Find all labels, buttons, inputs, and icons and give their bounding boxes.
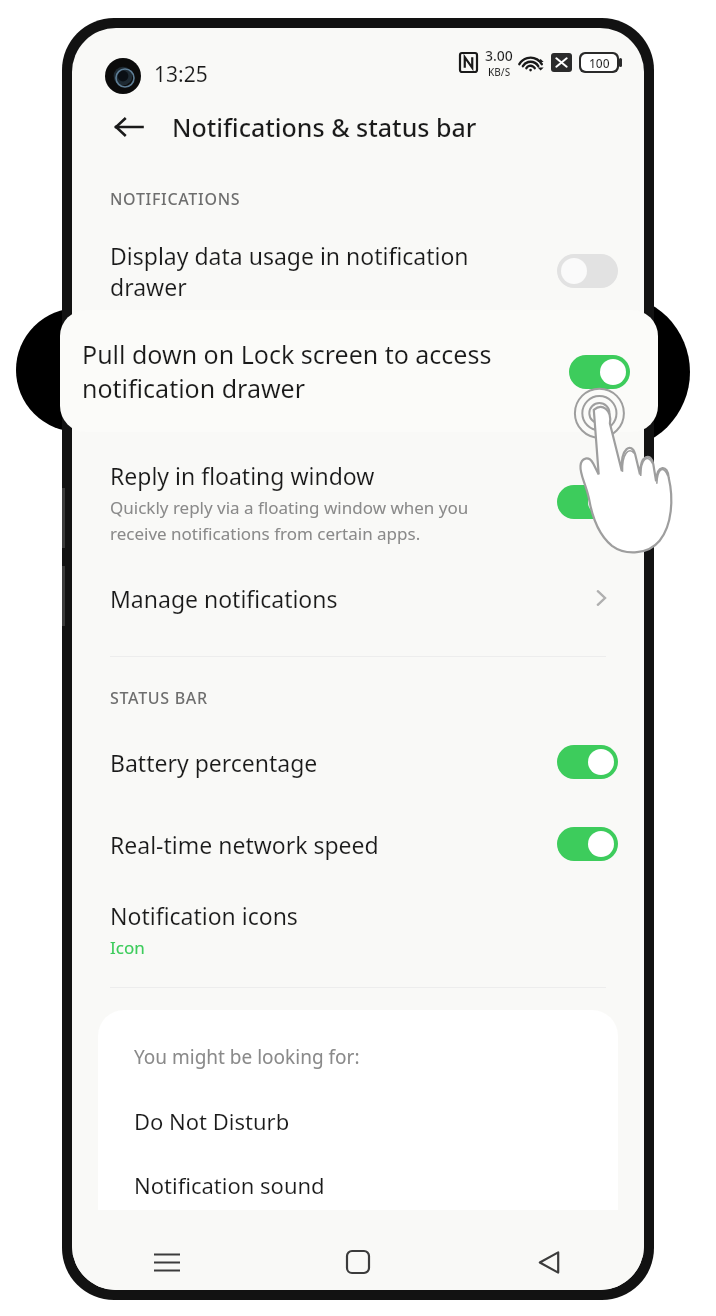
staticText: 13:25	[154, 60, 208, 89]
button[interactable]: Pull down on Lock screen toggle	[569, 355, 630, 389]
staticText: Battery percentage	[110, 747, 318, 778]
button[interactable]: Display data usage in notification drawe…	[72, 222, 644, 320]
staticText: NOTIFICATIONS	[110, 188, 241, 210]
button[interactable]: Do Not Disturb	[134, 1106, 290, 1136]
button[interactable]: Pull down on Lock screen to access notif…	[60, 310, 658, 432]
staticText: Real-time network speed	[110, 829, 379, 860]
button[interactable]: Real-time network speed	[72, 803, 644, 885]
staticText: 100	[589, 55, 610, 71]
button[interactable]: Battery percentage	[72, 721, 644, 803]
button[interactable]: Recents	[72, 1234, 262, 1290]
staticText: Manage notifications	[110, 583, 338, 614]
other: Open	[584, 581, 618, 615]
button[interactable]: Toggle off	[557, 254, 618, 288]
staticText: Notifications & status bar	[172, 110, 477, 144]
staticText: Icon	[110, 936, 145, 959]
button[interactable]: Back	[453, 1234, 644, 1290]
button[interactable]: Notification icons	[72, 885, 644, 973]
staticText: Notification icons	[110, 900, 298, 931]
button[interactable]: Home	[262, 1234, 453, 1290]
button[interactable]: Toggle on	[557, 827, 618, 861]
button[interactable]: Toggle on	[557, 745, 618, 779]
staticText: Display data usage in notification drawe…	[110, 240, 469, 303]
staticText: Quickly reply via a floating window when…	[110, 496, 469, 545]
staticText: STATUS BAR	[110, 687, 208, 709]
staticText: 3.00	[485, 46, 513, 65]
staticText: Reply in floating window	[110, 460, 375, 491]
staticText: KB/S	[488, 65, 511, 79]
button[interactable]: Back	[108, 106, 150, 148]
button[interactable]: Reply in floating window	[72, 444, 644, 560]
staticText: You might be looking for:	[134, 1044, 360, 1070]
staticText: Notification sound	[134, 1170, 325, 1200]
staticText: Pull down on Lock screen to access notif…	[82, 337, 559, 406]
staticText: Do Not Disturb	[134, 1106, 290, 1136]
button[interactable]: Notification sound	[134, 1170, 325, 1200]
button[interactable]: Manage notifications	[72, 560, 644, 636]
button[interactable]: Toggle on	[557, 485, 618, 519]
